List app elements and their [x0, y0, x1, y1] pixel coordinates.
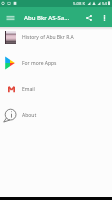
staticText: 5.08 K [73, 1, 85, 7]
button[interactable]: Share [81, 10, 97, 26]
staticText: 54 [102, 1, 107, 7]
staticText: History of Abu Bkr R.A [22, 34, 74, 41]
staticText: Abu Bkr AS-Sa... [24, 14, 70, 22]
button[interactable]: For more Apps [0, 50, 112, 76]
button[interactable]: More options [97, 10, 112, 25]
button[interactable]: About [0, 102, 112, 128]
button[interactable]: Email [0, 76, 112, 102]
staticText: For more Apps [22, 60, 57, 67]
staticText: About [22, 112, 37, 119]
button[interactable]: History of Abu Bkr R.A [0, 24, 112, 50]
staticText: Email [22, 86, 35, 93]
button[interactable]: Open navigation drawer [0, 7, 20, 27]
